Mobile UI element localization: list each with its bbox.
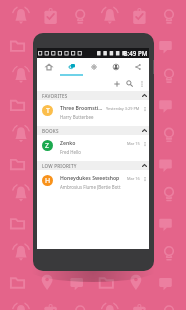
button[interactable]: Item menu	[140, 139, 149, 148]
button[interactable]: Collapse FAVORITES	[139, 91, 149, 100]
button[interactable]: Collapse BOOKS	[139, 126, 149, 135]
button[interactable]: Z	[37, 135, 149, 161]
button[interactable]: H	[37, 170, 149, 196]
staticText: Harry Butterbee	[60, 114, 94, 120]
button[interactable]: Contacts	[105, 58, 127, 76]
staticText: 3:49 PM	[124, 49, 148, 57]
staticText: H	[45, 176, 51, 186]
staticText: Mar 15	[127, 141, 140, 146]
button[interactable]: Share	[127, 58, 149, 76]
button[interactable]: Search	[123, 77, 136, 90]
button[interactable]: Add	[110, 77, 123, 90]
staticText: Fred Hello	[60, 149, 81, 155]
button[interactable]: Ideas	[83, 58, 105, 76]
staticText: Honeydukes Sweetshop	[60, 175, 120, 182]
staticText: Yesterday 3:29 PM	[106, 106, 140, 111]
button[interactable]: Item menu	[140, 104, 149, 113]
button[interactable]: Chats	[60, 58, 83, 76]
staticText: T	[46, 106, 50, 116]
staticText: Zenko	[60, 140, 76, 147]
staticText: FAVORITES	[42, 93, 68, 99]
button[interactable]: Collapse LOW PRIORITY	[139, 161, 149, 170]
staticText: Three Broomsti...	[60, 105, 103, 112]
button[interactable]: Item menu	[140, 174, 149, 183]
button[interactable]: More options	[136, 78, 147, 89]
staticText: LOW PRIORITY	[42, 163, 77, 169]
staticText: Z	[45, 141, 50, 151]
staticText: Mar 16	[127, 176, 140, 181]
button[interactable]: Home	[37, 58, 60, 76]
staticText: BOOKS	[42, 128, 59, 134]
button[interactable]: T	[37, 100, 149, 126]
staticText: Ambrosius Flume (Bertie Bott	[60, 184, 121, 190]
